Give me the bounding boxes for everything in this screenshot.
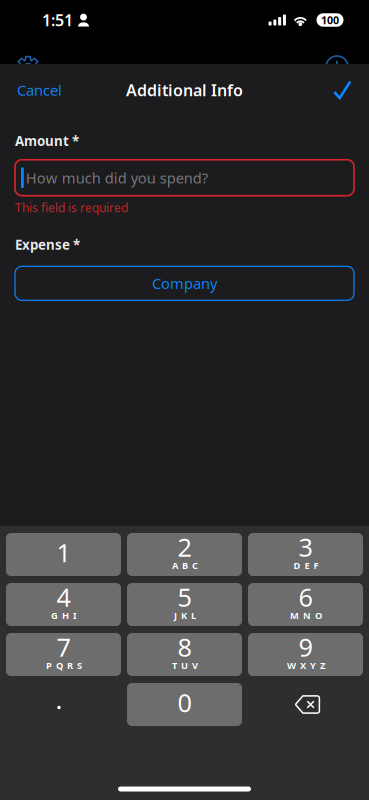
button[interactable]: 9 [248, 633, 363, 676]
staticText: Company [152, 274, 217, 293]
staticText: 100 [321, 13, 339, 27]
staticText: Amount * [15, 132, 79, 150]
staticText: 5 [177, 580, 191, 614]
staticText: 9 [298, 630, 312, 664]
button[interactable]: Decimal point [6, 683, 121, 726]
button[interactable]: 3 [248, 533, 363, 576]
staticText: D E F [294, 559, 319, 572]
staticText: Expense * [15, 236, 80, 253]
staticText: 7 [56, 630, 70, 664]
button[interactable]: 5 [127, 583, 242, 626]
staticText: 3 [298, 530, 312, 564]
button[interactable]: 7 [6, 633, 121, 676]
staticText: 4 [56, 580, 70, 614]
button[interactable]: Cancel [0, 67, 72, 113]
button[interactable]: 4 [6, 583, 121, 626]
staticText: J K L [174, 609, 196, 622]
button[interactable]: Save [319, 67, 369, 113]
staticText: How much did you spend? [26, 168, 208, 187]
staticText: M N O [290, 609, 322, 622]
staticText: P Q R S [46, 659, 82, 672]
staticText: A B C [172, 559, 198, 572]
staticText: 0 [177, 686, 191, 719]
button[interactable]: 6 [248, 583, 363, 626]
button[interactable]: 8 [127, 633, 242, 676]
button[interactable]: 0 [127, 683, 242, 726]
button[interactable]: 1 [6, 533, 121, 576]
staticText: This field is required [15, 200, 128, 216]
staticText: 1 [56, 536, 70, 569]
button[interactable]: Delete [248, 683, 363, 726]
button[interactable]: Company [15, 266, 354, 300]
staticText: T U V [172, 659, 198, 672]
staticText: W X Y Z [287, 659, 325, 672]
button[interactable]: 2 [127, 533, 242, 576]
staticText: 2 [177, 530, 191, 564]
staticText: Additional Info [126, 79, 243, 101]
staticText: Cancel [17, 80, 62, 100]
staticText: 1:51 [42, 9, 73, 31]
staticText: 8 [177, 630, 191, 664]
staticText: G H I [51, 609, 77, 622]
staticText: 6 [298, 580, 312, 614]
